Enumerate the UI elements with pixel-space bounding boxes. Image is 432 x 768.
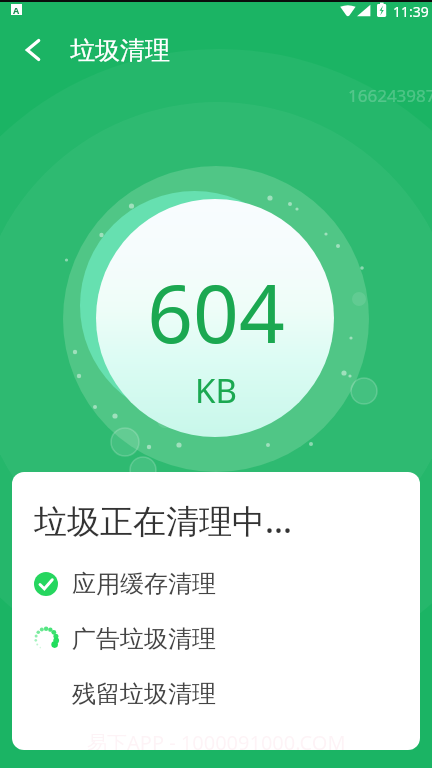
staticText: 604 <box>147 257 285 366</box>
staticText: 垃圾清理 <box>70 35 170 66</box>
staticText: 166243987 <box>348 84 432 107</box>
staticText: 11:39 <box>393 2 429 21</box>
staticText: KB <box>195 368 237 413</box>
button[interactable]: 应用缓存清理 <box>32 569 420 599</box>
button[interactable]: 广告垃圾清理 <box>32 624 420 654</box>
button[interactable]: 残留垃圾清理 <box>32 679 420 709</box>
staticText: 易下APP - 1000091000.COM <box>87 729 346 750</box>
staticText: 残留垃圾清理 <box>72 679 216 709</box>
staticText: 广告垃圾清理 <box>72 624 216 654</box>
staticText: A <box>13 4 20 15</box>
button[interactable]: Back <box>9 26 57 74</box>
staticText: 应用缓存清理 <box>72 569 216 599</box>
staticText: 垃圾正在清理中... <box>34 498 292 543</box>
